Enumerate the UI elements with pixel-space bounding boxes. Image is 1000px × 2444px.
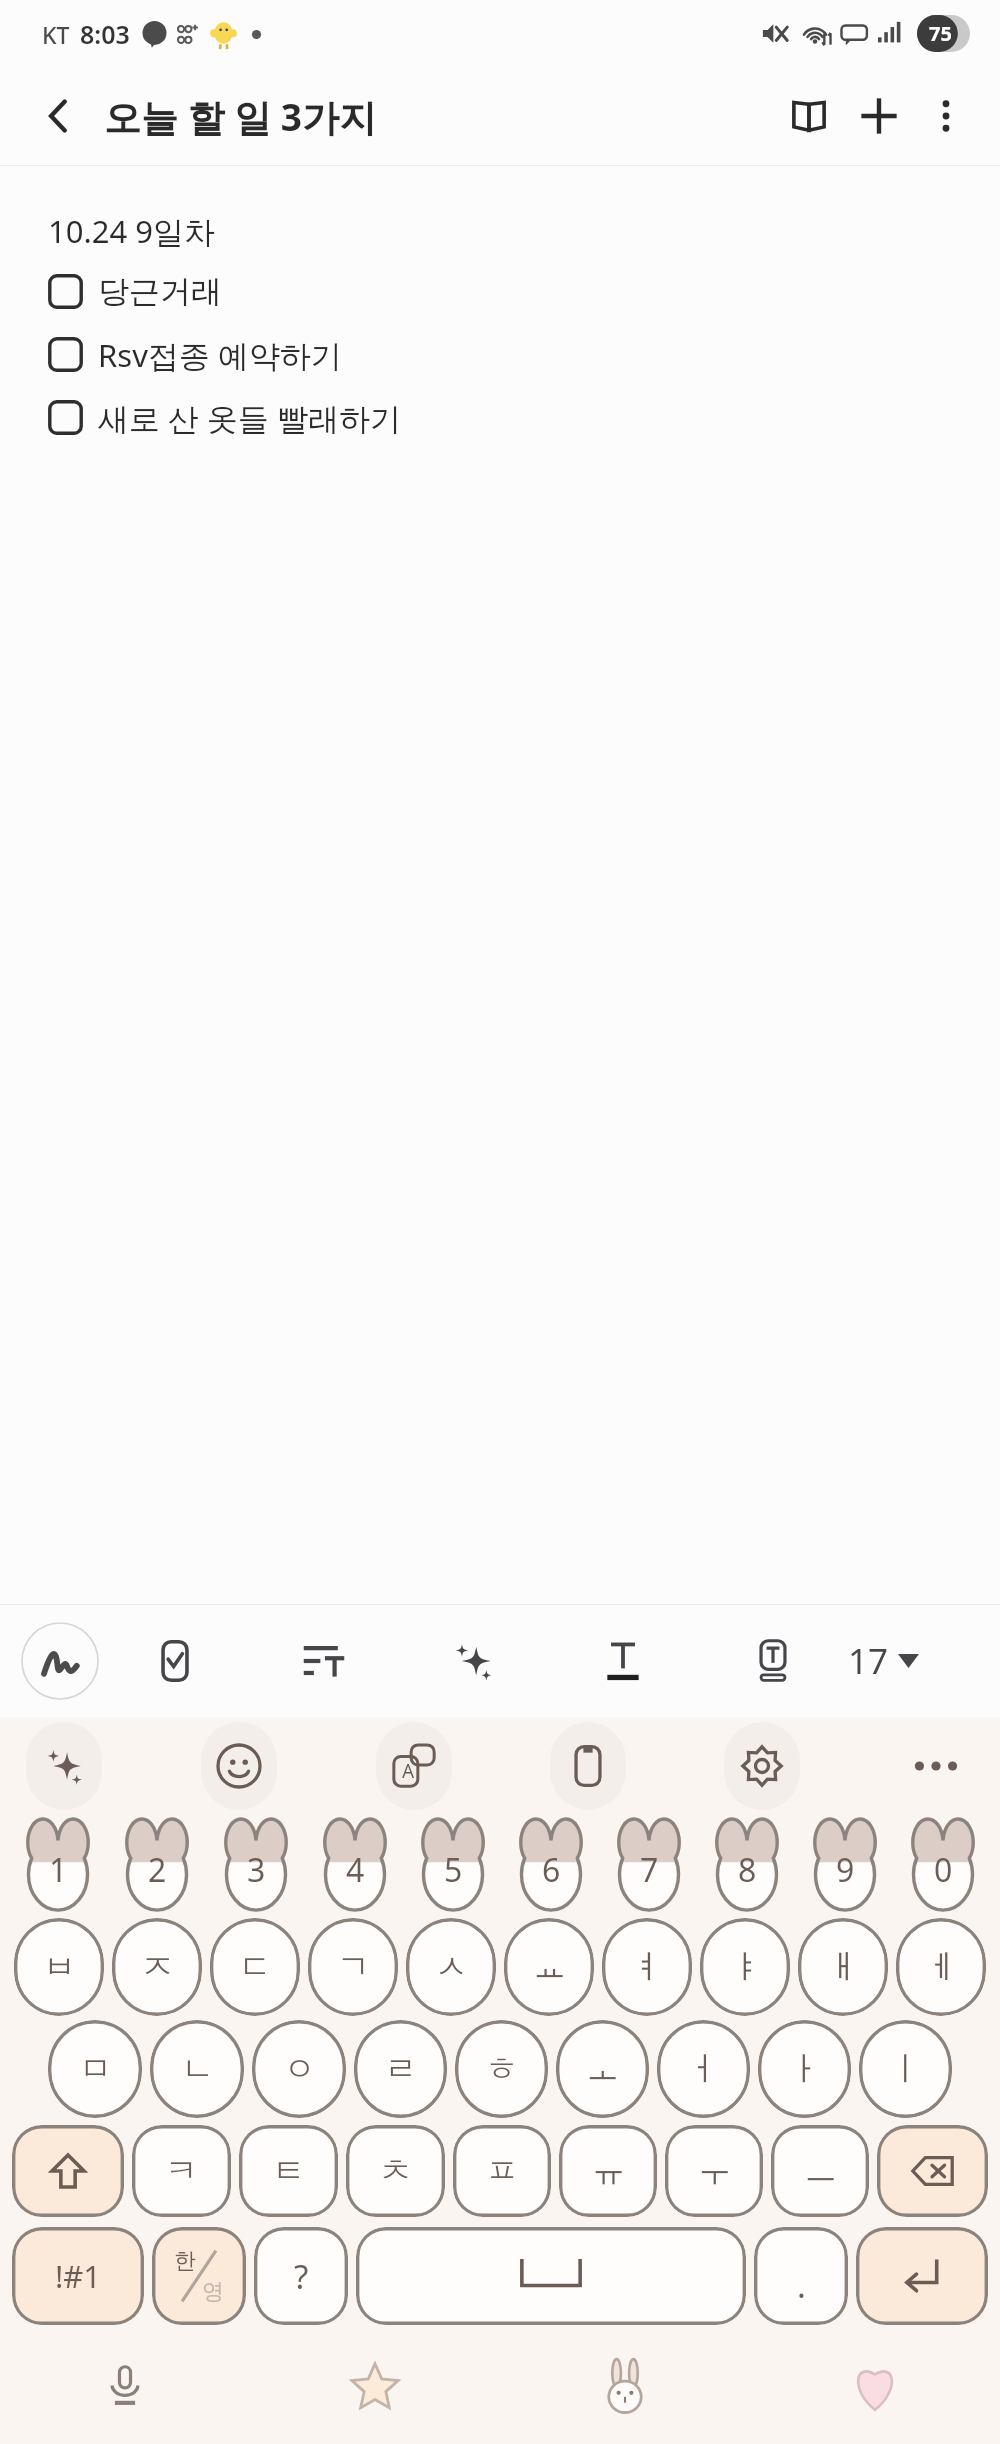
button[interactable]: Text format [548,1604,698,1717]
button[interactable]: More options [914,84,978,148]
button[interactable]: ? [254,2227,348,2325]
button[interactable]: Checklist [100,1604,249,1717]
button[interactable]: ㅋ [132,2125,231,2217]
staticText: KT [42,19,70,50]
button[interactable]: ㄹ [354,2020,447,2118]
staticText: 0 [934,1848,953,1892]
staticText: ㅔ [925,1946,958,1988]
staticText: ㅠ [592,2150,625,2192]
button[interactable]: Paragraph style [249,1604,398,1717]
button[interactable]: Favorite stickers [250,2330,500,2444]
button[interactable]: 2 [107,1816,206,1914]
button[interactable]: 당근거래 [48,260,222,323]
button[interactable]: Backspace [877,2125,988,2217]
button[interactable]: ㅊ [346,2125,445,2217]
staticText: ㅊ [379,2150,412,2192]
button[interactable]: 8 [698,1816,796,1914]
staticText: 8:03 [80,17,130,51]
staticText: 한 [174,2247,196,2275]
button[interactable]: ㅇ [252,2020,346,2118]
staticText: ㅈ [141,1946,174,1988]
button[interactable]: Translate [376,1722,452,1810]
button[interactable]: Text box [698,1604,848,1717]
button[interactable]: ㅗ [556,2020,649,2118]
staticText: ㅛ [533,1946,566,1988]
button[interactable]: ㅍ [453,2125,551,2217]
button[interactable]: Change language [152,2227,246,2325]
staticText: ㅏ [788,2048,821,2090]
button[interactable]: 오늘 할 일 3가지 [104,91,377,142]
button[interactable]: ㅛ [504,1918,594,2016]
button[interactable]: Emoji [201,1722,277,1810]
button[interactable]: !#1 [12,2227,144,2325]
button[interactable]: ㅈ [112,1918,202,2016]
button[interactable]: ㅣ [859,2020,952,2118]
button[interactable]: ㅌ [239,2125,338,2217]
button[interactable]: 새로 산 옷들 빨래하기 [48,386,402,449]
staticText: ㅇ [283,2048,316,2090]
button[interactable]: ㅐ [798,1918,888,2016]
staticText: . [797,2263,806,2308]
button[interactable]: ㅓ [657,2020,750,2118]
button[interactable]: ㅎ [455,2020,548,2118]
staticText: ㄱ [337,1946,370,1988]
button[interactable]: 3 [206,1816,305,1914]
button[interactable]: Handwriting [20,1621,100,1701]
button[interactable]: Clipboard [550,1722,626,1810]
button[interactable]: 4 [305,1816,404,1914]
staticText: ㅂ [43,1946,76,1988]
button[interactable]: ㅂ [14,1918,104,2016]
staticText: ㅕ [631,1946,664,1988]
button[interactable]: 7 [600,1816,698,1914]
button[interactable]: Shift [12,2125,124,2217]
button[interactable]: ㅡ [771,2125,869,2217]
button[interactable]: . [754,2227,848,2325]
staticText: ㄹ [384,2048,417,2090]
button[interactable]: Heart stickers [750,2330,1000,2444]
button[interactable]: Voice input [0,2330,250,2444]
button[interactable]: Rsv접종 예약하기 [48,323,342,386]
button[interactable]: ㅑ [700,1918,790,2016]
button[interactable]: Character stickers [500,2330,750,2444]
button[interactable]: 1 [8,1816,107,1914]
staticText: 7 [640,1848,659,1892]
staticText: !#1 [55,2255,102,2297]
button[interactable]: Space [356,2227,746,2325]
button[interactable]: Back [28,85,90,147]
staticText: 9 [836,1848,855,1892]
button[interactable]: 6 [502,1816,600,1914]
button[interactable]: Keyboard settings [724,1722,800,1810]
button[interactable]: 9 [796,1816,894,1914]
button[interactable]: ㅜ [665,2125,763,2217]
button[interactable]: ㅠ [559,2125,657,2217]
button[interactable]: Add [844,81,914,151]
staticText: ㅡ [804,2150,837,2192]
staticText: 4 [346,1848,365,1892]
staticText: ㅍ [486,2150,519,2192]
button[interactable]: AI suggestions [26,1722,102,1810]
button[interactable]: 17 [848,1604,1000,1717]
button[interactable]: ㄷ [210,1918,300,2016]
staticText: ㅁ [79,2048,112,2090]
button[interactable]: Reading view [774,81,844,151]
button[interactable]: More [898,1722,974,1810]
button[interactable]: ㅔ [896,1918,986,2016]
button[interactable]: ㅏ [758,2020,851,2118]
button[interactable]: 0 [894,1816,992,1914]
button[interactable]: Enter [856,2227,988,2325]
staticText: Rsv접종 예약하기 [98,334,342,376]
button[interactable]: ㅅ [406,1918,496,2016]
staticText: ㅑ [729,1946,762,1988]
staticText: 10.24 9일차 [48,210,216,252]
button[interactable]: ㄴ [150,2020,244,2118]
staticText: 8 [738,1848,757,1892]
staticText: ㅣ [889,2048,922,2090]
staticText: ㅅ [435,1946,468,1988]
button[interactable]: 5 [404,1816,502,1914]
staticText: 2 [148,1848,167,1892]
button[interactable]: ㅕ [602,1918,692,2016]
button[interactable]: AI assist [398,1604,548,1717]
button[interactable]: ㄱ [308,1918,398,2016]
staticText: 17 [848,1637,889,1685]
button[interactable]: ㅁ [48,2020,142,2118]
